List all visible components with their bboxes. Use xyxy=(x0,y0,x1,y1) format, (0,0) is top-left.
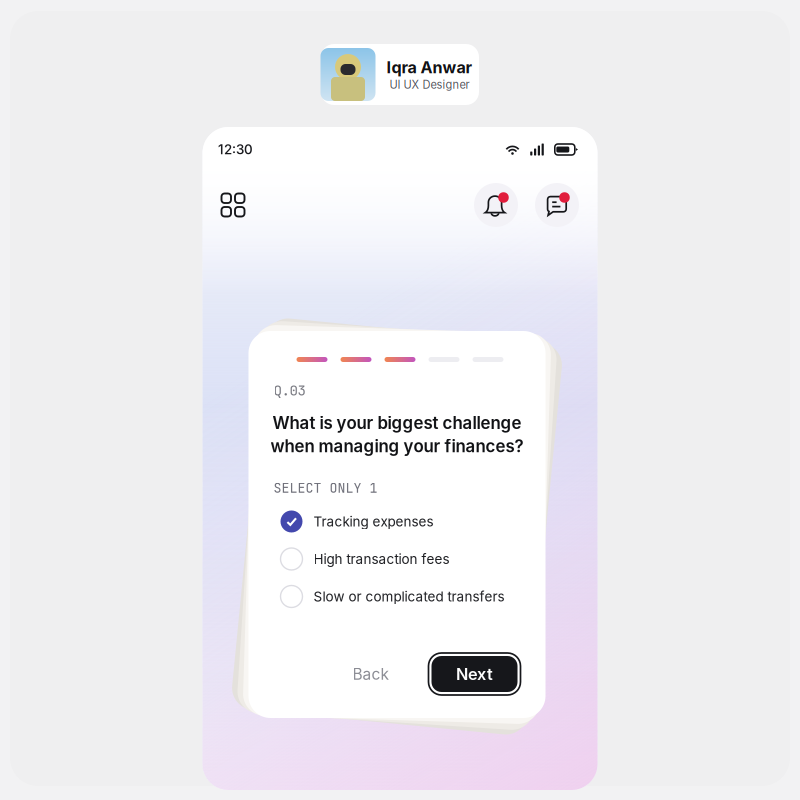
staticText: Tracking expenses xyxy=(313,513,433,530)
button[interactable]: Messages xyxy=(535,183,579,227)
button[interactable]: Next xyxy=(428,653,520,695)
button[interactable]: Tracking expenses xyxy=(273,503,520,540)
staticText: Next xyxy=(456,664,493,684)
staticText: What is your biggest challenge xyxy=(272,413,521,433)
staticText: UI UX Designer xyxy=(389,78,469,91)
button[interactable]: Notifications xyxy=(474,183,518,227)
staticText: Iqra Anwar xyxy=(386,57,472,77)
staticText: Back xyxy=(352,665,388,683)
staticText: when managing your finances? xyxy=(270,436,523,456)
button[interactable]: Menu xyxy=(211,183,255,227)
button[interactable]: High transaction fees xyxy=(273,540,520,578)
button[interactable]: Slow or complicated transfers xyxy=(273,578,520,615)
button[interactable]: Back xyxy=(344,653,396,695)
staticText: Slow or complicated transfers xyxy=(313,588,504,605)
staticText: Q.03 xyxy=(273,381,305,400)
staticText: 12:30 xyxy=(218,141,253,157)
staticText: High transaction fees xyxy=(313,551,449,567)
staticText: SELECT ONLY 1 xyxy=(273,479,377,497)
